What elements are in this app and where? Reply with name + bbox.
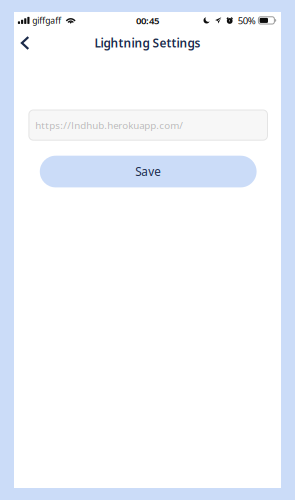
staticText: https://lndhub.herokuapp.com/ <box>35 118 183 132</box>
staticText: 00:45 <box>136 14 159 27</box>
button[interactable]: Save <box>40 156 257 187</box>
button[interactable]: Back <box>14 30 36 56</box>
staticText: 50% <box>238 14 256 27</box>
staticText: Save <box>135 164 161 180</box>
staticText: giffgaff <box>32 15 61 26</box>
staticText: Lightning Settings <box>94 35 200 51</box>
